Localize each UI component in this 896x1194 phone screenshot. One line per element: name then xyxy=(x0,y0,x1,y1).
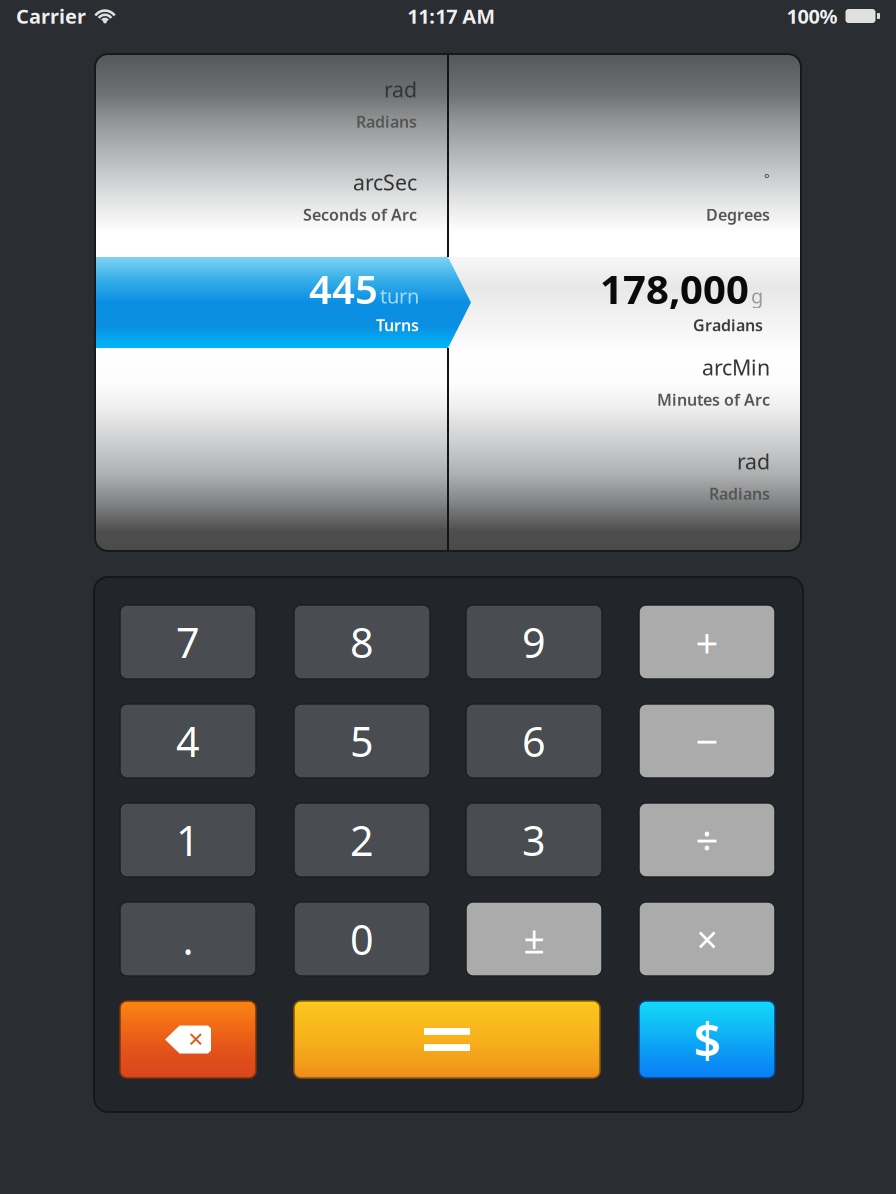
staticText: 178,000 xyxy=(600,262,749,315)
staticText: turn xyxy=(380,282,419,309)
button[interactable]: 445 xyxy=(95,267,448,315)
staticText: Radians xyxy=(709,483,770,504)
staticText: 0 xyxy=(350,912,374,966)
button[interactable]: ° xyxy=(448,168,801,218)
button[interactable]: rad xyxy=(448,447,801,497)
staticText: Seconds of Arc xyxy=(303,204,417,225)
staticText: × xyxy=(696,914,717,964)
staticText: 8 xyxy=(350,615,374,669)
button[interactable]: ± xyxy=(466,902,602,976)
staticText: rad xyxy=(384,75,417,103)
staticText: ÷ xyxy=(695,813,718,866)
button[interactable]: Delete xyxy=(120,1001,256,1078)
button[interactable]: 2 xyxy=(294,803,430,877)
staticText: 5 xyxy=(350,714,374,768)
staticText: 445 xyxy=(309,262,378,315)
staticText: Gradians xyxy=(693,314,763,336)
staticText: Carrier xyxy=(16,3,86,29)
staticText: arcSec xyxy=(353,168,417,196)
staticText: 6 xyxy=(522,714,546,768)
button[interactable]: arcSec xyxy=(95,168,448,218)
staticText: − xyxy=(695,714,718,767)
staticText: 100% xyxy=(786,3,837,29)
staticText: . xyxy=(182,912,193,966)
staticText: Radians xyxy=(356,111,417,132)
button[interactable]: arcMin xyxy=(448,353,801,403)
staticText: Minutes of Arc xyxy=(657,389,770,410)
button[interactable]: − xyxy=(639,704,775,778)
button[interactable]: 3 xyxy=(466,803,602,877)
staticText: rad xyxy=(737,447,770,475)
staticText: 4 xyxy=(176,714,200,768)
button[interactable]: 5 xyxy=(294,704,430,778)
button[interactable]: 7 xyxy=(120,605,256,679)
button[interactable]: . xyxy=(120,902,256,976)
button[interactable]: Currency xyxy=(639,1001,775,1078)
staticText: Degrees xyxy=(706,204,770,225)
button[interactable]: ÷ xyxy=(639,803,775,877)
button[interactable]: + xyxy=(639,605,775,679)
button[interactable]: 9 xyxy=(466,605,602,679)
staticText: 1 xyxy=(176,813,200,867)
button[interactable]: 4 xyxy=(120,704,256,778)
staticText: ° xyxy=(764,169,770,187)
button[interactable]: 1 xyxy=(120,803,256,877)
staticText: 7 xyxy=(176,615,200,669)
staticText: arcMin xyxy=(702,353,770,381)
staticText: ✕ xyxy=(187,1028,204,1051)
button[interactable]: × xyxy=(639,902,775,976)
button[interactable]: rad xyxy=(95,75,448,125)
button[interactable]: 8 xyxy=(294,605,430,679)
staticText: Turns xyxy=(376,314,419,336)
staticText: 11:17 AM xyxy=(407,3,495,29)
button[interactable]: 178,000 xyxy=(448,267,801,315)
button[interactable]: 6 xyxy=(466,704,602,778)
staticText: 2 xyxy=(350,813,374,867)
staticText: 9 xyxy=(522,615,546,669)
button[interactable]: 0 xyxy=(294,902,430,976)
staticText: ± xyxy=(523,914,544,964)
button[interactable]: Equals xyxy=(294,1001,600,1078)
staticText: 3 xyxy=(522,813,546,867)
staticText: g xyxy=(751,282,763,309)
staticText: + xyxy=(695,615,718,668)
staticText: $ xyxy=(693,1008,720,1071)
